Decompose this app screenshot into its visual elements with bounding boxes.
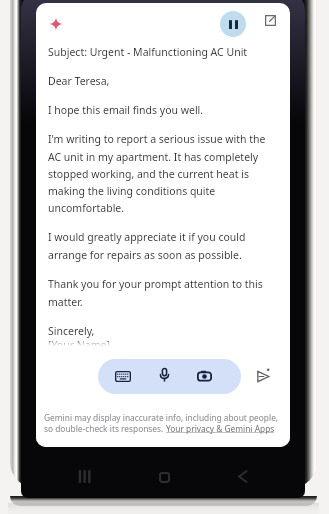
staticText: Gemini may display inaccurate info, incl… — [44, 412, 279, 423]
button[interactable]: Open in new — [258, 8, 282, 32]
button[interactable]: Camera — [190, 362, 218, 390]
staticText: Dear Teresa, — [48, 74, 110, 88]
staticText: [Your Name] — [48, 338, 110, 352]
button[interactable]: Keyboard — [98, 359, 241, 394]
staticText: Your privacy & Gemini Apps — [166, 423, 275, 434]
staticText: Sincerely, — [48, 324, 95, 338]
button[interactable]: Send — [246, 359, 281, 394]
button[interactable]: Keyboard — [109, 362, 137, 390]
button[interactable]: Recent apps — [70, 461, 100, 491]
button[interactable]: Voice input — [150, 361, 178, 389]
staticText: I'm writing to report a serious issue wi… — [48, 132, 278, 215]
button[interactable]: Home — [149, 462, 179, 492]
staticText: so double-check its responses. — [44, 423, 166, 434]
staticText: I hope this email finds you well. — [48, 103, 204, 117]
button[interactable]: Back — [227, 461, 257, 491]
button[interactable]: Pause — [220, 11, 246, 37]
staticText: Thank you for your prompt attention to t… — [48, 277, 278, 309]
staticText: I would greatly appreciate it if you cou… — [48, 230, 278, 262]
staticText: Subject: Urgent - Malfunctioning AC Unit — [48, 45, 248, 59]
